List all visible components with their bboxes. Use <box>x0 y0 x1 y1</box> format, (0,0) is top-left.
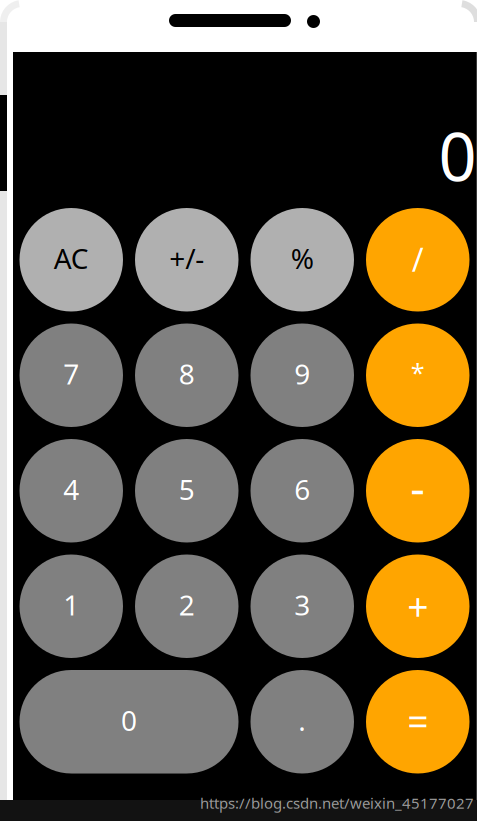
staticText: / <box>412 237 424 281</box>
staticText: = <box>407 695 428 746</box>
button[interactable]: + <box>366 554 469 658</box>
staticText: 0 <box>121 701 137 739</box>
button[interactable]: = <box>366 670 469 773</box>
staticText: 8 <box>179 355 195 393</box>
button[interactable]: - <box>366 439 469 542</box>
button[interactable]: 4 <box>19 439 123 542</box>
button[interactable]: AC <box>19 208 123 311</box>
staticText: 0 <box>438 111 476 200</box>
staticText: 5 <box>179 470 195 508</box>
button[interactable]: 0 <box>19 670 238 773</box>
staticText: - <box>410 456 425 518</box>
button[interactable]: % <box>250 208 354 311</box>
button[interactable]: 9 <box>250 323 354 427</box>
staticText: +/- <box>169 239 204 277</box>
staticText: 7 <box>63 355 79 393</box>
staticText: AC <box>54 239 89 277</box>
staticText: . <box>298 701 306 739</box>
staticText: 4 <box>63 470 79 508</box>
button[interactable]: 6 <box>250 439 354 542</box>
staticText: 6 <box>294 470 310 508</box>
staticText: 9 <box>294 355 310 393</box>
staticText: 1 <box>63 586 79 624</box>
staticText: + <box>407 581 428 632</box>
button[interactable]: 7 <box>19 323 123 427</box>
button[interactable]: 5 <box>135 439 238 542</box>
button[interactable]: 1 <box>19 554 123 658</box>
staticText: https://blog.csdn.net/weixin_45177027 <box>200 793 474 813</box>
button[interactable]: 8 <box>135 323 238 427</box>
button[interactable]: +/- <box>135 208 238 311</box>
staticText: * <box>411 355 425 389</box>
staticText: % <box>291 239 314 277</box>
button[interactable]: . <box>250 670 354 773</box>
button[interactable]: 3 <box>250 554 354 658</box>
staticText: 2 <box>179 586 195 624</box>
staticText: 3 <box>294 586 310 624</box>
button[interactable]: * <box>366 323 469 427</box>
button[interactable]: 2 <box>135 554 238 658</box>
button[interactable]: / <box>366 208 469 311</box>
